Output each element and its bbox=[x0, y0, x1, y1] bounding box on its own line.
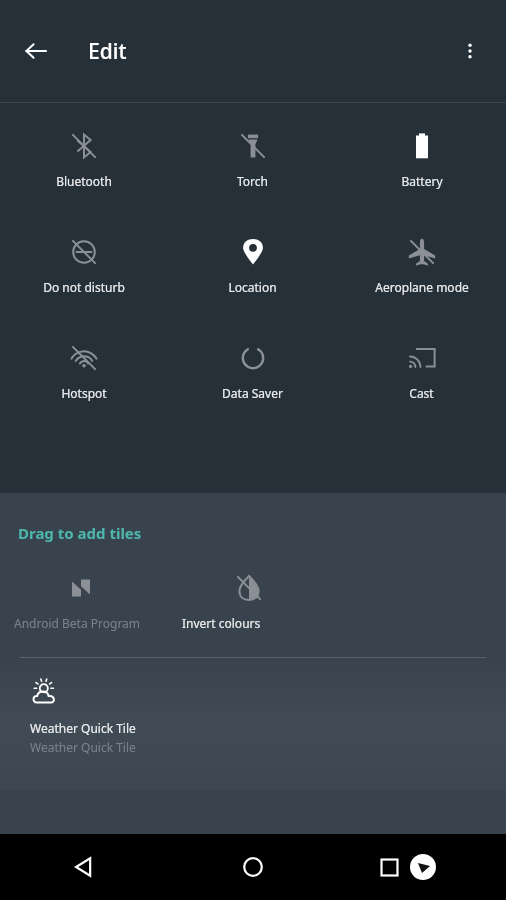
staticText: Battery bbox=[401, 173, 443, 189]
button[interactable]: Weather Quick Tile bbox=[0, 658, 506, 790]
staticText: Do not disturb bbox=[43, 279, 125, 295]
staticText: Cast bbox=[409, 385, 434, 401]
button[interactable]: Home bbox=[168, 834, 337, 900]
button[interactable]: Data Saver bbox=[168, 339, 337, 405]
button[interactable]: Back bbox=[8, 23, 64, 79]
button[interactable]: More options bbox=[442, 23, 498, 79]
staticText: Aeroplane mode bbox=[375, 279, 469, 295]
button[interactable]: Do not disturb bbox=[0, 233, 168, 299]
button[interactable]: Torch bbox=[168, 127, 337, 193]
staticText: Hotspot bbox=[61, 385, 107, 401]
staticText: Bluetooth bbox=[56, 173, 112, 189]
button[interactable]: Aeroplane mode bbox=[337, 233, 506, 299]
staticText: Invert colours bbox=[182, 615, 261, 631]
staticText: Location bbox=[228, 279, 277, 295]
staticText: Data Saver bbox=[222, 385, 283, 401]
button[interactable]: Battery bbox=[337, 127, 506, 193]
staticText: Weather Quick Tile bbox=[30, 739, 136, 755]
button[interactable]: Location bbox=[168, 233, 337, 299]
button[interactable]: Recent apps bbox=[337, 834, 506, 900]
button[interactable]: Back bbox=[0, 834, 168, 900]
button[interactable]: Android Beta Program bbox=[0, 573, 168, 631]
staticText: Drag to add tiles bbox=[18, 523, 142, 543]
button[interactable]: Bluetooth bbox=[0, 127, 168, 193]
staticText: Torch bbox=[237, 173, 268, 189]
button[interactable]: Invert colours bbox=[168, 573, 337, 631]
staticText: Android Beta Program bbox=[14, 615, 141, 631]
button[interactable]: Cast bbox=[337, 339, 506, 405]
staticText: Weather Quick Tile bbox=[30, 720, 136, 736]
staticText: Edit bbox=[88, 37, 127, 66]
button[interactable]: Hotspot bbox=[0, 339, 168, 405]
